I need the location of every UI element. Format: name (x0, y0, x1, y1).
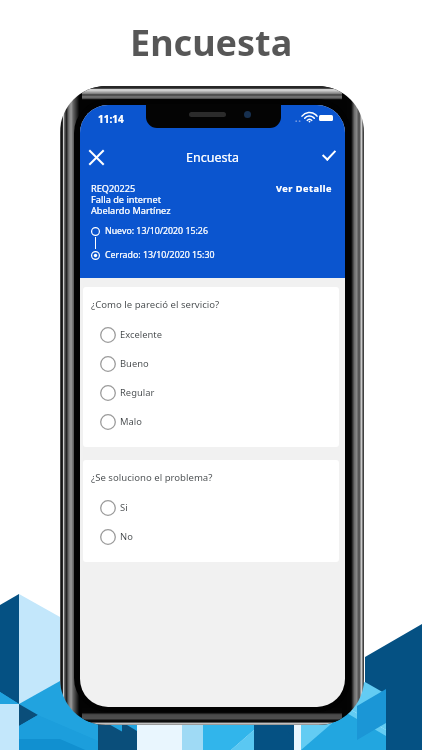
button[interactable]: Excelente (91, 320, 331, 349)
staticText: Cerrado: 13/10/2020 15:30 (105, 249, 215, 261)
staticText: Bueno (120, 357, 149, 370)
button[interactable]: Malo (91, 407, 331, 436)
staticText: ¿Como le pareció el servicio? (91, 298, 220, 311)
staticText: Malo (120, 415, 142, 428)
staticText: 11:14 (98, 112, 124, 126)
staticText: Nuevo: 13/10/2020 15:26 (105, 225, 208, 237)
button[interactable]: Bueno (91, 349, 331, 378)
staticText: Encuesta (130, 18, 293, 67)
button[interactable]: Si (91, 493, 331, 522)
staticText: ¿Se soluciono el problema? (91, 471, 213, 484)
button[interactable]: Ver Detalle (276, 182, 332, 195)
staticText: Regular (120, 386, 155, 399)
staticText: REQ20225 Falla de internet Abelardo Mart… (91, 182, 276, 216)
staticText: Excelente (120, 328, 163, 341)
button[interactable]: Cerrar (80, 141, 112, 173)
button[interactable]: Regular (91, 378, 331, 407)
button[interactable]: No (91, 522, 331, 551)
button[interactable]: Guardar (313, 139, 345, 171)
staticText: Si (120, 501, 128, 514)
staticText: Encuesta (186, 149, 239, 166)
staticText: No (120, 530, 133, 543)
